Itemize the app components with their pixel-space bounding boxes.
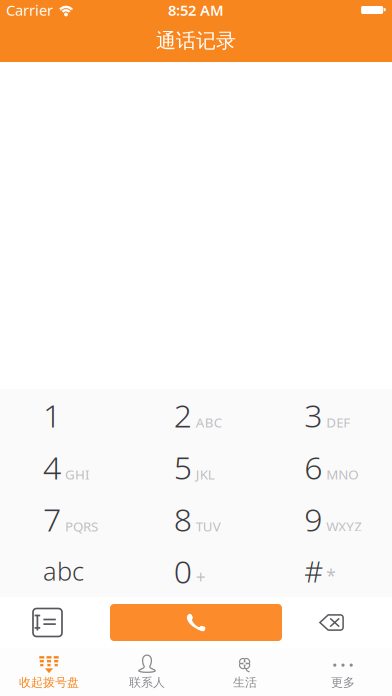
staticText: GHI — [65, 465, 90, 483]
staticText: 6 — [304, 446, 322, 488]
staticText: Carrier — [6, 0, 53, 20]
button[interactable]: 2 — [131, 389, 261, 441]
staticText: 联系人 — [129, 675, 165, 690]
staticText: # — [304, 551, 323, 590]
button[interactable]: 0 — [131, 545, 261, 597]
staticText: 更多 — [331, 675, 355, 690]
staticText: 收起拨号盘 — [19, 675, 79, 690]
button[interactable]: abc — [0, 545, 131, 597]
button[interactable]: Notes — [0, 597, 110, 648]
button[interactable]: Delete — [282, 597, 392, 648]
staticText: WXYZ — [326, 517, 362, 535]
staticText: 通话记录 — [156, 28, 236, 53]
staticText: 生活 — [233, 675, 257, 690]
staticText: 2 — [174, 394, 192, 436]
staticText: PQRS — [65, 517, 98, 535]
staticText: 1 — [43, 394, 61, 436]
staticText: ABC — [196, 413, 222, 431]
button[interactable]: 8 — [131, 493, 261, 545]
button[interactable]: 9 — [261, 493, 392, 545]
staticText: + — [196, 565, 206, 588]
staticText: 9 — [304, 498, 322, 540]
staticText: 3 — [304, 394, 322, 436]
button[interactable]: 3 — [261, 389, 392, 441]
staticText: 4 — [43, 446, 61, 488]
button[interactable]: 生活 — [196, 648, 294, 696]
button[interactable]: 6 — [261, 441, 392, 493]
staticText: TUV — [196, 517, 221, 535]
staticText: 0 — [174, 550, 192, 592]
button[interactable]: 7 — [0, 493, 131, 545]
staticText: 8:52 AM — [168, 0, 224, 20]
button[interactable]: 4 — [0, 441, 131, 493]
staticText: DEF — [326, 413, 350, 431]
staticText: JKL — [196, 465, 215, 483]
button[interactable]: 5 — [131, 441, 261, 493]
button[interactable]: # — [261, 545, 392, 597]
staticText: 7 — [43, 498, 61, 540]
staticText: abc — [43, 554, 84, 588]
staticText: MNO — [326, 465, 358, 483]
button[interactable]: 收起拨号盘 — [0, 648, 98, 696]
staticText: 8 — [174, 498, 192, 540]
button[interactable]: 更多 — [294, 648, 392, 696]
button[interactable]: 联系人 — [98, 648, 196, 696]
staticText: * — [326, 564, 336, 587]
staticText: 5 — [174, 446, 192, 488]
button[interactable]: 1 — [0, 389, 131, 441]
button[interactable]: Call — [110, 604, 282, 641]
